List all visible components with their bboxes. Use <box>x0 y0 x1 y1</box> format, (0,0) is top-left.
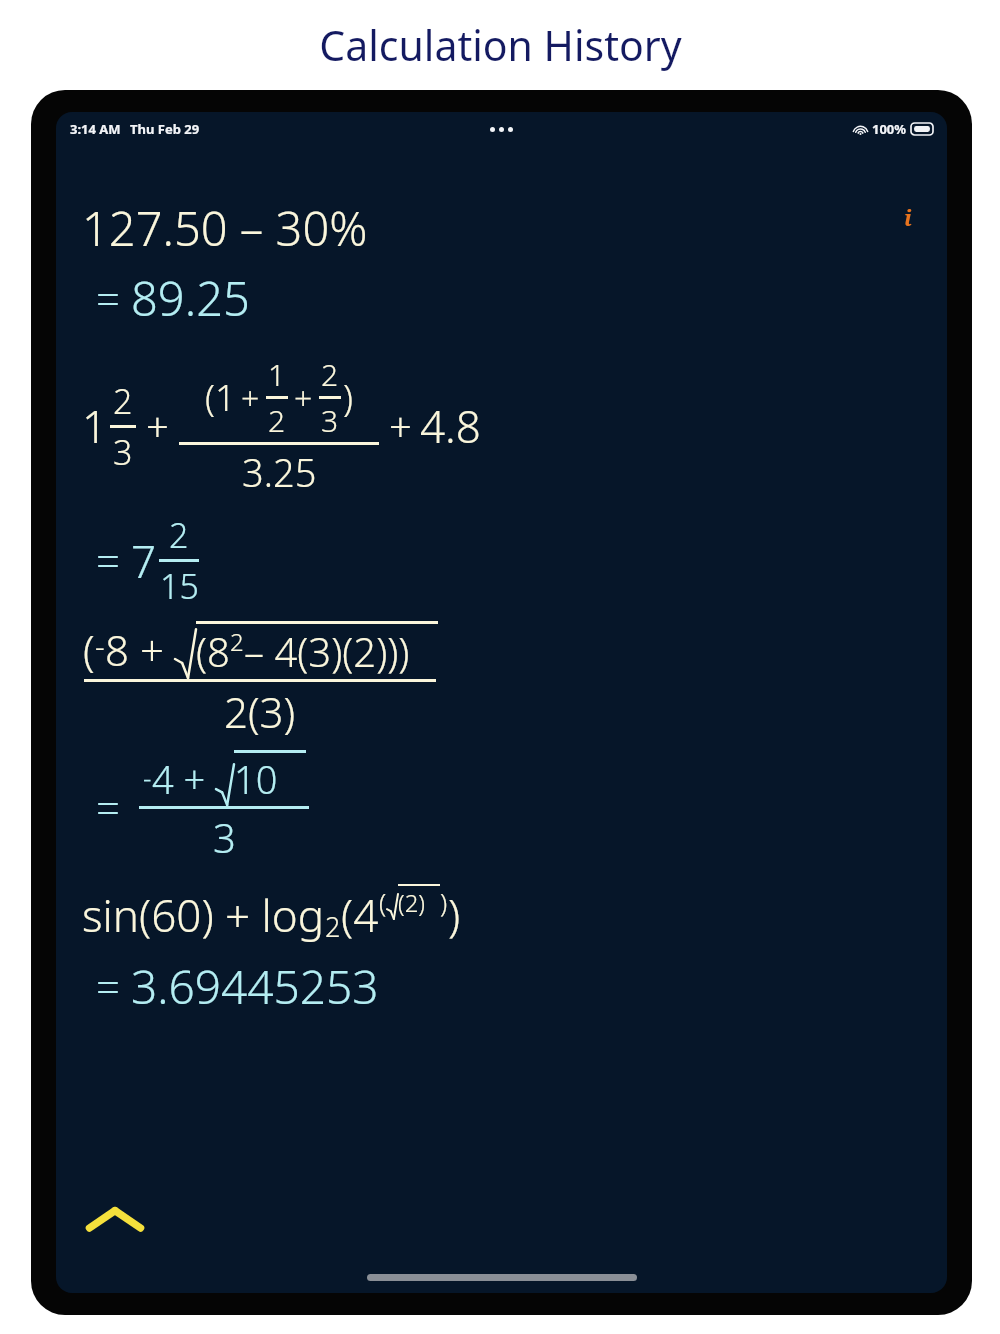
button[interactable]: ( <box>82 621 947 864</box>
button[interactable]: sin(60) + log <box>82 884 947 1018</box>
staticText: 3 <box>113 429 133 475</box>
staticText: 3 <box>213 810 236 864</box>
staticText: 1 <box>268 354 286 395</box>
staticText: 2 <box>268 400 286 441</box>
staticText: 127.50 – 30% <box>82 196 368 260</box>
staticText: 2 <box>230 625 244 658</box>
staticText: = <box>96 958 131 1015</box>
staticText: (2) <box>398 886 425 919</box>
staticText: ) <box>343 373 353 422</box>
staticText: 3 <box>321 400 339 441</box>
staticText: ) <box>448 885 461 945</box>
staticText: 89.25 <box>131 266 250 330</box>
button[interactable]: Info <box>891 200 925 234</box>
staticText: 2 <box>169 512 189 558</box>
staticText: 1 <box>82 396 108 456</box>
staticText: + <box>146 399 169 453</box>
staticText: + <box>294 376 313 420</box>
button[interactable]: 127.50 – 30% <box>82 196 947 330</box>
staticText: 3.69445253 <box>131 955 379 1018</box>
staticText: 10 <box>234 753 278 805</box>
staticText: - <box>143 760 152 795</box>
staticText: ( <box>379 884 387 919</box>
staticText: + <box>389 399 412 453</box>
staticText: i <box>904 202 912 232</box>
staticText: ) <box>440 884 448 919</box>
button[interactable]: Scroll up <box>80 1197 150 1241</box>
staticText: = <box>96 779 131 836</box>
staticText: (4 <box>341 885 379 945</box>
staticText: 100% <box>872 120 907 138</box>
staticText: 15 <box>160 563 199 609</box>
staticText: 2 <box>325 908 341 945</box>
staticText: 7 <box>131 531 157 591</box>
staticText: sin(60) + log <box>82 885 325 945</box>
staticText: = <box>96 532 131 589</box>
staticText: (1 <box>205 373 236 422</box>
staticText: 3:14 AM <box>70 120 121 138</box>
staticText: = <box>96 270 131 327</box>
staticText: 3.25 <box>242 446 317 498</box>
staticText: 4 + <box>152 753 216 805</box>
staticText: (8 <box>196 624 230 678</box>
staticText: 2 <box>113 378 133 424</box>
staticText: + <box>241 376 260 420</box>
staticText: Thu Feb 29 <box>130 120 200 138</box>
staticText: 2(3) <box>224 683 296 740</box>
staticText: 2 <box>321 354 339 395</box>
button[interactable]: 1 <box>82 354 947 609</box>
staticText: 8 + <box>105 621 175 678</box>
staticText: – 4(3)(2))) <box>244 624 410 678</box>
staticText: 4.8 <box>420 396 481 456</box>
staticText: - <box>95 625 105 666</box>
staticText: Calculation History <box>319 17 682 73</box>
staticText: ( <box>83 621 95 678</box>
